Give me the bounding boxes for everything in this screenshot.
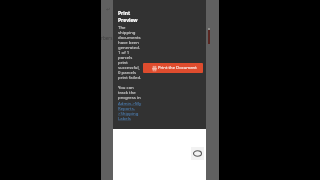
staticText: You can track the progress in (118, 84, 141, 100)
staticText: The shipping documents have been generat… (118, 24, 142, 80)
staticText: ↵ (106, 6, 111, 12)
staticText: Print the Document (158, 65, 197, 71)
staticText: rbers (101, 35, 113, 41)
button[interactable]: Chat support (191, 147, 204, 160)
staticText: Print Preview (118, 10, 138, 23)
button[interactable]: Admin->My Reports- >Shipping Labels (118, 100, 142, 121)
button[interactable]: Print the Document (143, 63, 203, 73)
